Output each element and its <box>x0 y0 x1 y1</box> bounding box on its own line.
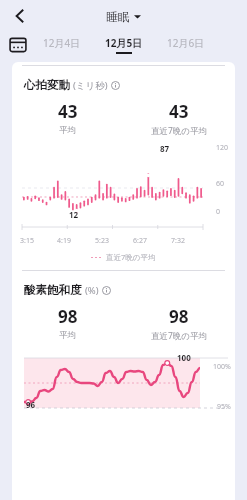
staticText: 3:15 <box>20 236 57 246</box>
staticText: 12月6日 <box>167 36 205 50</box>
button[interactable]: Calendar <box>7 34 29 56</box>
button[interactable]: 12月4日 <box>41 36 83 54</box>
staticText: 96 <box>26 399 36 410</box>
button[interactable]: Info <box>102 286 111 295</box>
staticText: 6:27 <box>133 236 171 246</box>
staticText: 12月4日 <box>43 36 81 50</box>
staticText: 心拍変動 <box>24 78 70 92</box>
staticText: 43 <box>169 100 189 123</box>
staticText: 7:32 <box>171 236 209 246</box>
staticText: 平均 <box>59 330 76 341</box>
staticText: 4:19 <box>57 236 95 246</box>
staticText: 43 <box>58 100 78 123</box>
staticText: 98 <box>58 305 78 328</box>
staticText: 60 <box>216 179 225 189</box>
button[interactable]: Info <box>111 81 120 90</box>
button[interactable]: 睡眠 <box>106 9 141 24</box>
staticText: 睡眠 <box>106 9 130 24</box>
staticText: 12月5日 <box>105 36 143 50</box>
staticText: 98 <box>169 305 189 328</box>
staticText: 100 <box>177 352 191 363</box>
staticText: 95% <box>217 402 231 412</box>
staticText: 直近7晩の平均 <box>106 252 156 262</box>
staticText: (%) <box>85 284 99 297</box>
staticText: 120 <box>216 143 229 153</box>
staticText: 直近7晩の平均 <box>151 125 208 137</box>
staticText: 5:23 <box>95 236 133 246</box>
staticText: 酸素飽和度 <box>24 283 82 297</box>
staticText: 平均 <box>59 125 76 136</box>
staticText: (ミリ秒) <box>73 79 108 92</box>
button[interactable]: 12月5日 <box>103 36 145 54</box>
staticText: 直近7晩の平均 <box>151 330 208 342</box>
button[interactable]: 12月6日 <box>165 36 207 54</box>
staticText: 87 <box>160 143 170 154</box>
staticText: 100% <box>213 362 231 372</box>
staticText: 12 <box>69 209 79 220</box>
button[interactable]: Back <box>6 2 34 30</box>
staticText: 0 <box>216 207 221 217</box>
